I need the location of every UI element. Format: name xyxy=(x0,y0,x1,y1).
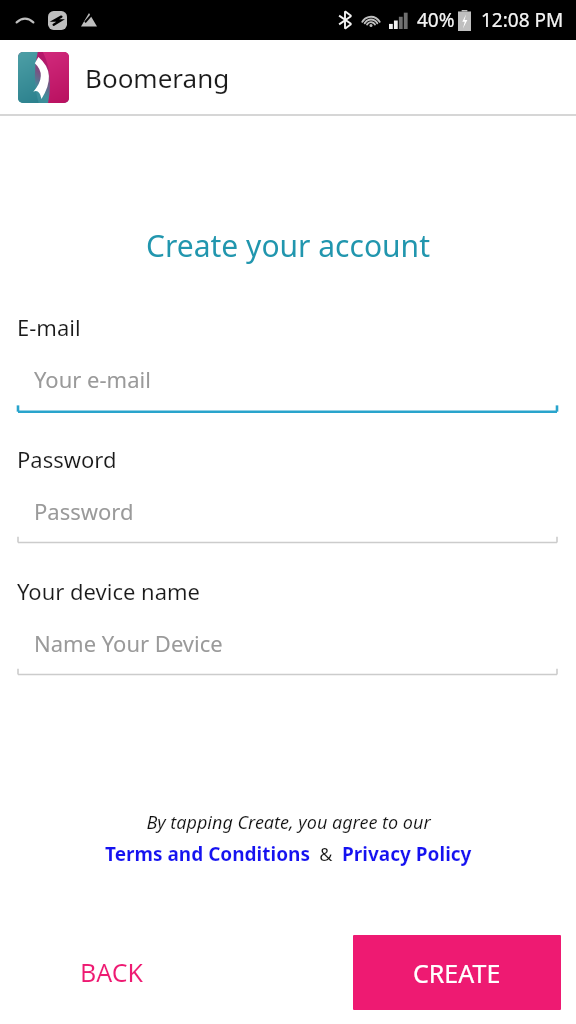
staticText: CREATE xyxy=(413,956,501,990)
staticText: 12:08 PM xyxy=(481,7,564,33)
staticText: By tapping Create, you agree to our xyxy=(146,810,431,835)
button[interactable]: Password xyxy=(34,496,576,526)
staticText: 40% xyxy=(417,7,455,33)
button[interactable]: BACK xyxy=(56,941,168,1003)
staticText: BACK xyxy=(80,955,144,989)
staticText: Name Your Device xyxy=(34,628,223,658)
staticText: E-mail xyxy=(17,312,81,342)
staticText: Password xyxy=(17,444,117,474)
staticText: Your e-mail xyxy=(34,364,151,394)
staticText: Password xyxy=(34,496,134,526)
button[interactable]: CREATE xyxy=(353,935,561,1010)
staticText: Terms and Conditions xyxy=(105,841,310,867)
staticText: Your device name xyxy=(17,576,201,606)
button[interactable]: Privacy Policy xyxy=(342,841,472,867)
button[interactable]: Terms and Conditions xyxy=(105,841,310,867)
button[interactable]: Your e-mail xyxy=(34,364,576,394)
staticText: Create your account xyxy=(0,225,576,266)
staticText: & xyxy=(310,842,342,867)
staticText: Privacy Policy xyxy=(342,841,472,867)
staticText: Boomerang xyxy=(85,60,230,95)
button[interactable]: Name Your Device xyxy=(34,628,576,658)
